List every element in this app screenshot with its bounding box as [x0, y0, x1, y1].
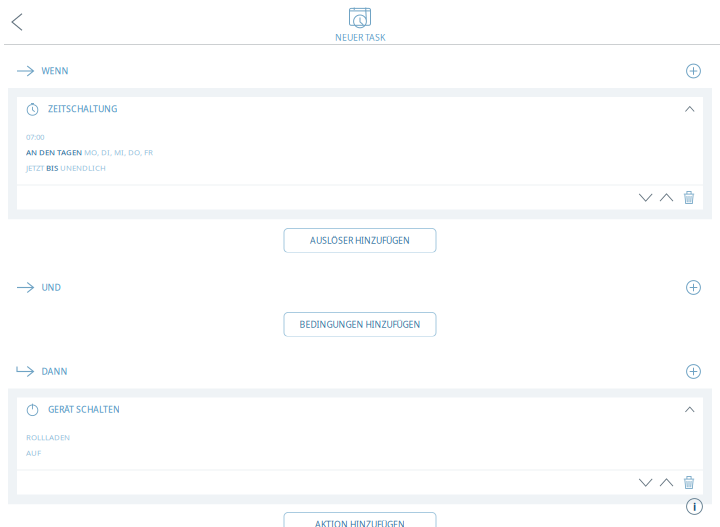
staticText: BEDINGUNGEN HINZUFÜGEN — [299, 319, 420, 330]
staticText: MO, DI, MI, DO, FR — [84, 147, 153, 157]
staticText: NEUER TASK — [335, 32, 385, 43]
button[interactable]: AKTION HINZUFÜGEN — [284, 512, 436, 527]
staticText — [58, 162, 60, 173]
button[interactable]: Add WENN — [672, 54, 720, 88]
staticText: ROLLLADEN — [26, 432, 70, 442]
button[interactable]: Move up — [652, 185, 673, 209]
staticText: UND — [41, 282, 60, 293]
staticText: ZEITSCHALTUNG — [48, 103, 117, 115]
staticText: JETZT — [26, 162, 46, 173]
staticText: AKTION HINZUFÜGEN — [315, 519, 405, 527]
staticText: DANN — [41, 366, 67, 377]
staticText: UNENDLICH — [60, 162, 106, 173]
button[interactable]: Info — [681, 493, 707, 519]
staticText: BIS — [46, 162, 58, 173]
button[interactable]: Delete — [673, 185, 703, 209]
button[interactable]: Back — [0, 0, 36, 44]
button[interactable]: GERÄT SCHALTEN — [17, 397, 703, 421]
staticText: AUSLÖSER HINZUFÜGEN — [310, 235, 410, 246]
button[interactable]: Delete — [673, 470, 703, 494]
button[interactable]: Add DANN — [672, 354, 720, 388]
button[interactable]: WENN — [0, 54, 78, 88]
button[interactable]: Move down — [639, 185, 652, 209]
button[interactable]: Move down — [639, 470, 652, 494]
staticText: AN DEN TAGEN — [26, 147, 82, 157]
staticText: AUF — [26, 447, 41, 458]
staticText: 07:00 — [26, 131, 44, 142]
staticText: i — [693, 499, 696, 514]
button[interactable]: BEDINGUNGEN HINZUFÜGEN — [284, 312, 436, 336]
button[interactable]: DANN — [0, 354, 77, 388]
staticText: GERÄT SCHALTEN — [48, 404, 120, 415]
button[interactable]: Move up — [652, 470, 673, 494]
button[interactable]: AUSLÖSER HINZUFÜGEN — [284, 228, 436, 252]
button[interactable]: ZEITSCHALTUNG — [17, 97, 703, 121]
button[interactable]: Add UND — [672, 270, 720, 304]
button[interactable]: UND — [0, 270, 70, 304]
staticText: WENN — [41, 65, 68, 77]
